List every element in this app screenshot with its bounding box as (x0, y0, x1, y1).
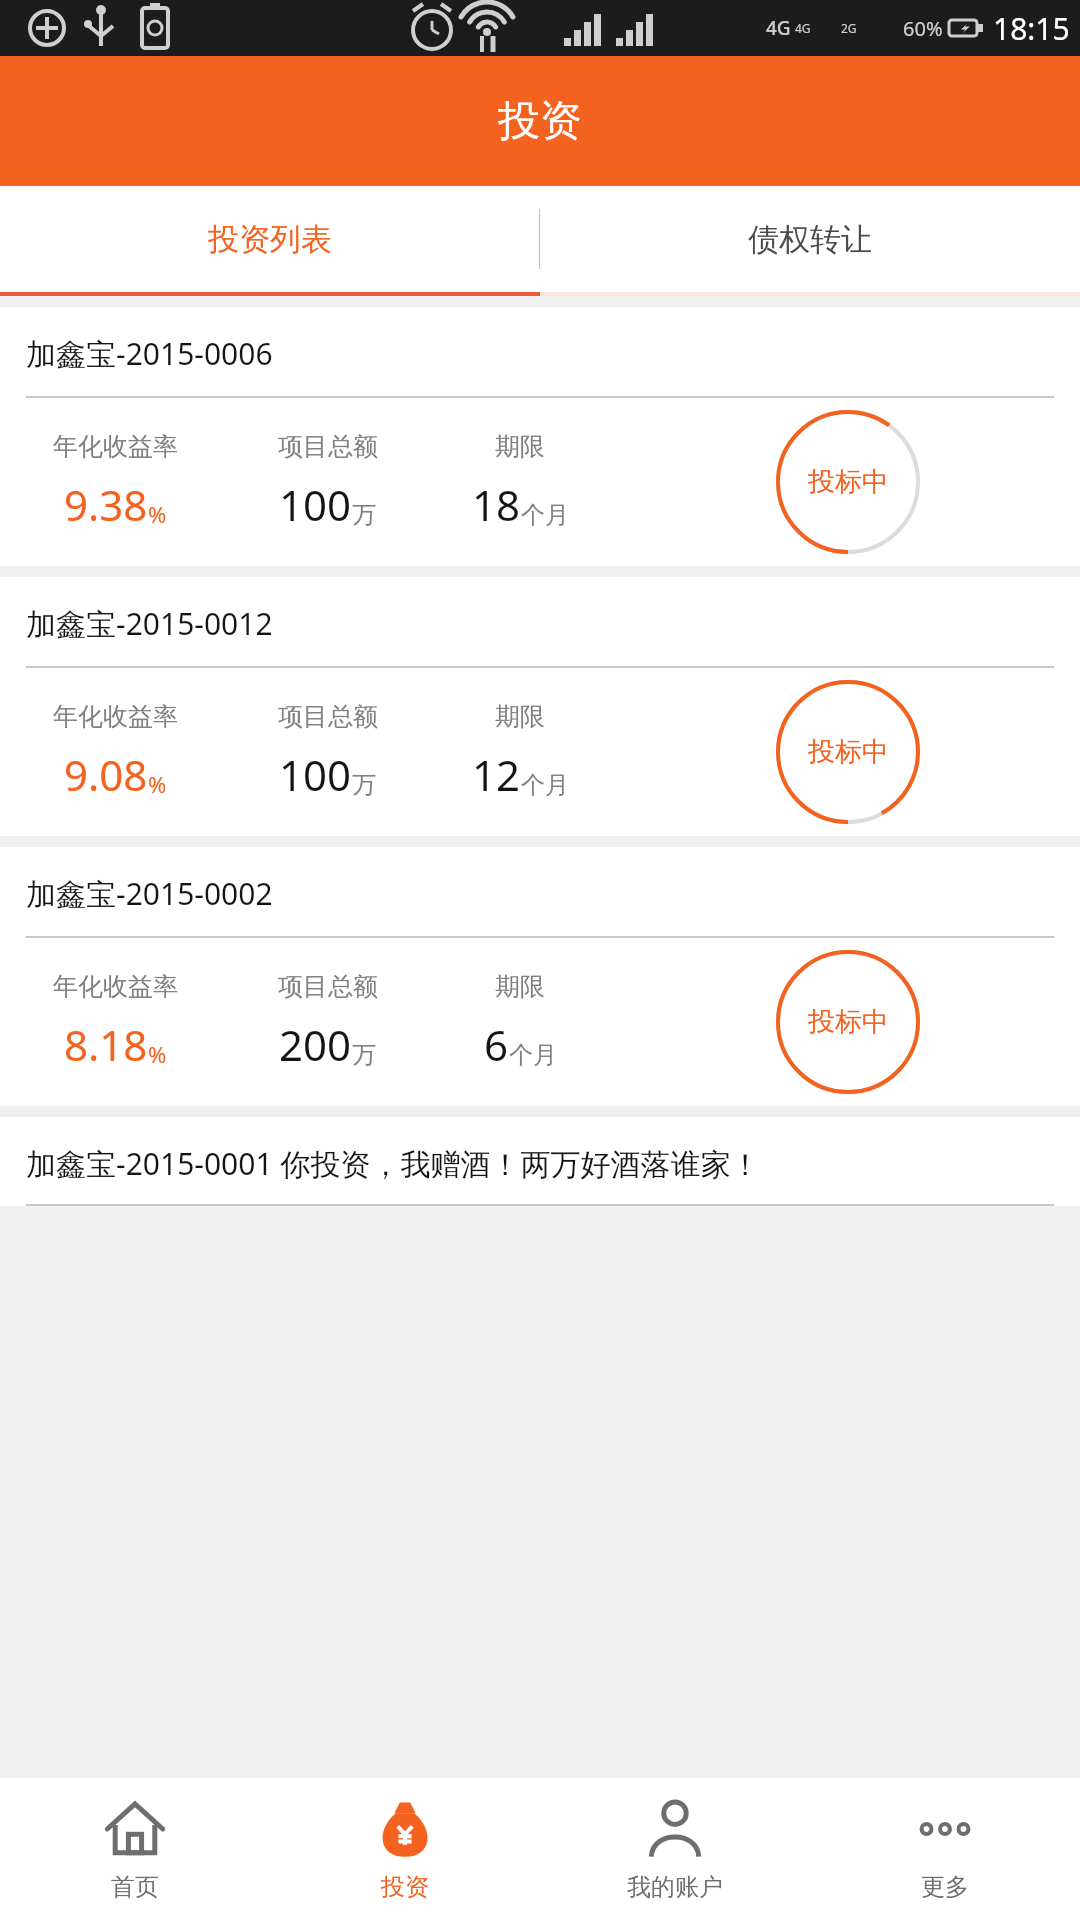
staticText: 4G (766, 15, 791, 41)
button[interactable]: 我的账户 (540, 1778, 810, 1920)
staticText: 个月 (509, 1040, 557, 1070)
staticText: 万 (352, 1040, 376, 1070)
button[interactable]: 加鑫宝-2015-0002 (0, 847, 1080, 1106)
staticText: 投资 (381, 1872, 429, 1902)
staticText: 加鑫宝-2015-0002 (26, 873, 273, 914)
staticText: 年化收益率 (53, 431, 178, 462)
staticText: 债权转让 (748, 220, 872, 259)
staticText: 6 (484, 1016, 509, 1073)
staticText: 投资列表 (208, 220, 332, 259)
staticText: 项目总额 (278, 971, 378, 1002)
staticText: 期限 (495, 701, 545, 732)
staticText: 4G (795, 20, 811, 36)
staticText: 8.18 (64, 1016, 148, 1073)
staticText: 9.08 (64, 746, 148, 803)
staticText: 首页 (111, 1872, 159, 1902)
staticText: 万 (352, 500, 376, 530)
staticText: 200 (279, 1016, 352, 1073)
staticText: 加鑫宝-2015-0012 (26, 603, 273, 644)
staticText: 年化收益率 (53, 971, 178, 1002)
staticText: 12 (472, 746, 521, 803)
button[interactable]: 首页 (0, 1778, 270, 1920)
staticText: 加鑫宝-2015-0006 (26, 333, 273, 374)
staticText: 项目总额 (278, 701, 378, 732)
button[interactable]: 投资列表 (0, 186, 539, 292)
button[interactable]: 更多 (810, 1778, 1080, 1920)
staticText: 期限 (495, 431, 545, 462)
staticText: 100 (279, 746, 352, 803)
staticText: 万 (352, 770, 376, 800)
staticText: 年化收益率 (53, 701, 178, 732)
button[interactable]: 加鑫宝-2015-0006 (0, 307, 1080, 566)
staticText: 2G (841, 20, 857, 36)
staticText: 60% (903, 15, 943, 42)
staticText: % (148, 769, 167, 799)
staticText: 投标中 (808, 1005, 889, 1039)
staticText: 个月 (521, 770, 569, 800)
staticText: 项目总额 (278, 431, 378, 462)
button[interactable]: 加鑫宝-2015-0001 你投资，我赠酒！两万好酒落谁家！ (0, 1117, 1080, 1206)
staticText: 我的账户 (627, 1872, 723, 1902)
staticText: 更多 (921, 1872, 969, 1902)
staticText: 9.38 (64, 476, 148, 533)
staticText: 期限 (495, 971, 545, 1002)
button[interactable]: 债权转让 (540, 186, 1080, 292)
staticText: 投标中 (808, 735, 889, 769)
staticText: 18:15 (993, 8, 1070, 49)
staticText: 100 (279, 476, 352, 533)
staticText: 加鑫宝-2015-0001 你投资，我赠酒！两万好酒落谁家！ (26, 1143, 761, 1184)
staticText: 投资 (498, 95, 582, 148)
button[interactable]: 投资 (270, 1778, 540, 1920)
staticText: % (148, 499, 167, 529)
staticText: 18 (472, 476, 521, 533)
staticText: % (148, 1039, 167, 1069)
button[interactable]: 加鑫宝-2015-0012 (0, 577, 1080, 836)
staticText: 个月 (521, 500, 569, 530)
staticText: 投标中 (808, 465, 889, 499)
